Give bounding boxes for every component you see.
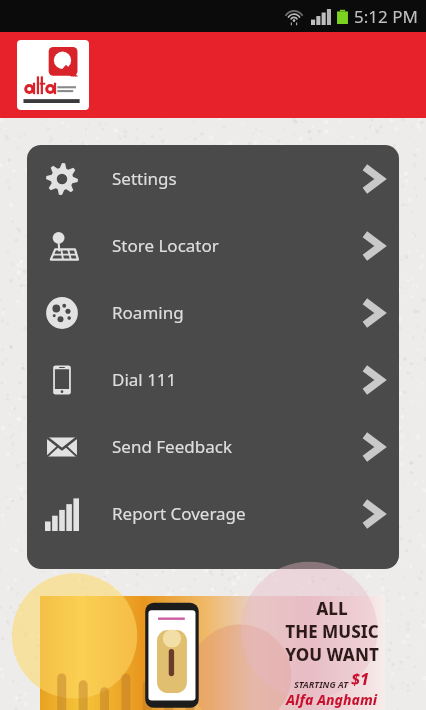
staticText: Dial 111 xyxy=(112,368,177,391)
button[interactable]: Alfa Anghami advertisement xyxy=(40,596,385,710)
staticText: 5:12 PM xyxy=(354,5,418,28)
staticText: $1 xyxy=(351,668,370,690)
staticText: STARTING AT xyxy=(294,678,351,690)
button[interactable]: Report Coverage xyxy=(27,480,399,547)
staticText: THE MUSIC xyxy=(285,620,379,643)
staticText: Alfa Anghami xyxy=(286,690,378,709)
button[interactable]: Alfa logo xyxy=(17,40,89,110)
button[interactable]: Send Feedback xyxy=(27,413,399,480)
button[interactable]: Store Locator xyxy=(27,212,399,279)
staticText: Report Coverage xyxy=(112,502,246,525)
staticText: Store Locator xyxy=(112,234,219,257)
button[interactable]: Settings xyxy=(27,145,399,212)
button[interactable]: Dial 111 xyxy=(27,346,399,413)
staticText: YOU WANT xyxy=(285,643,379,666)
button[interactable]: Roaming xyxy=(27,279,399,346)
staticText: Roaming xyxy=(112,301,184,324)
staticText: ALL xyxy=(316,597,348,620)
staticText: Send Feedback xyxy=(112,435,232,458)
staticText: Settings xyxy=(112,167,177,190)
